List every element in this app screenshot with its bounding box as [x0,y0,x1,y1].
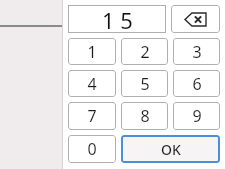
button[interactable]: 4 [68,70,116,97]
button[interactable]: 7 [68,102,116,130]
button[interactable]: 8 [121,102,168,130]
staticText: 0 [87,138,97,160]
button[interactable]: 2 [121,38,168,65]
button[interactable]: 1 5 [68,5,166,33]
staticText: 1 5 [102,5,133,33]
button[interactable]: Backspace [171,5,220,33]
button[interactable]: 6 [173,70,220,97]
button[interactable]: OK [121,135,220,163]
staticText: OK [161,140,181,159]
staticText: 3 [192,41,202,63]
button[interactable]: 1 [68,38,116,65]
button[interactable]: 5 [121,70,168,97]
staticText: 9 [192,105,202,127]
button[interactable]: 3 [173,38,220,65]
staticText: 8 [140,105,150,127]
button[interactable]: 9 [173,102,220,130]
staticText: 6 [192,73,202,95]
staticText: 2 [140,41,150,63]
staticText: 5 [140,73,150,95]
staticText: 4 [87,73,97,95]
staticText: 1 [87,41,97,63]
staticText: 7 [87,105,97,127]
button[interactable]: 0 [68,135,116,163]
